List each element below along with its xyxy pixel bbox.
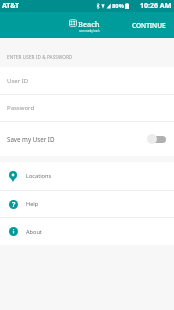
staticText: 10:26 AM — [140, 1, 172, 11]
staticText: AT&T — [2, 1, 20, 11]
staticText: Password — [7, 104, 35, 112]
button[interactable]: User ID — [0, 67, 174, 95]
button[interactable]: ? — [0, 191, 174, 218]
staticText: CONTINUE — [132, 21, 166, 30]
button[interactable]: Locations — [0, 162, 174, 191]
staticText: About — [26, 228, 42, 236]
staticText: 80% — [112, 2, 124, 10]
button[interactable]: CONTINUE — [124, 15, 174, 36]
button[interactable]: Save my User ID — [0, 122, 174, 156]
staticText: Save my User ID — [7, 135, 55, 143]
button[interactable]: About — [0, 218, 174, 245]
staticText: Help — [26, 200, 39, 208]
staticText: Locations — [26, 172, 52, 180]
staticText: community bank — [79, 29, 100, 33]
button[interactable]: Password — [0, 95, 174, 122]
staticText: ENTER USER ID & PASSWORD — [7, 54, 73, 60]
staticText: Beach — [78, 19, 100, 29]
staticText: ? — [12, 200, 16, 209]
staticText: User ID — [7, 77, 29, 85]
